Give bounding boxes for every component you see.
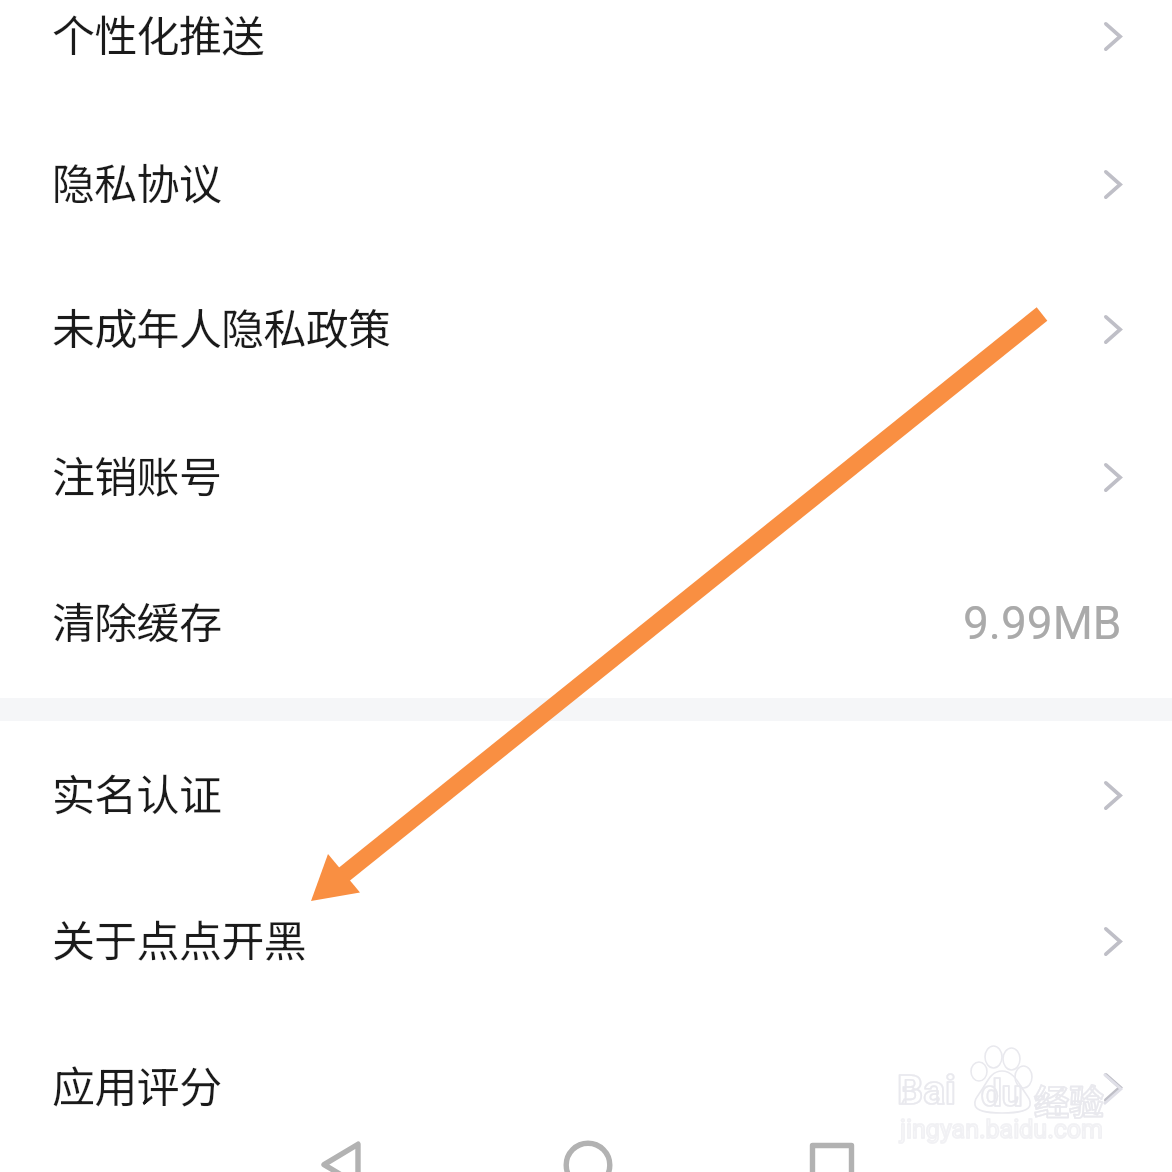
button[interactable]: 关于点点开黑 [0,864,1172,1011]
button[interactable]: Back [274,1096,474,1172]
button[interactable]: Recent apps [712,1096,912,1172]
button[interactable]: 隐私协议 [0,107,1172,254]
other: Open 应用评分 [1104,1073,1122,1102]
button[interactable]: 个性化推送 [0,0,1172,106]
button[interactable]: 应用评分 [0,1010,1172,1157]
other: Open 个性化推送 [1104,22,1122,51]
staticText: 个性化推送 [52,2,264,64]
button[interactable]: Home [488,1096,688,1172]
staticText: Bai [897,1066,956,1114]
staticText: du [981,1072,1023,1115]
button[interactable]: 未成年人隐私政策 [0,252,1172,399]
staticText: 应用评分 [52,1053,222,1115]
staticText: 经验 [1034,1074,1105,1125]
staticText: 隐私协议 [52,150,222,212]
staticText: 关于点点开黑 [52,907,306,969]
staticText: 实名认证 [52,761,222,823]
other: Open 关于点点开黑 [1104,927,1122,956]
button[interactable]: 清除缓存 [0,546,1172,693]
button[interactable]: 实名认证 [0,718,1172,865]
staticText: 注销账号 [52,443,222,505]
button[interactable]: 注销账号 [0,400,1172,547]
other: Open 未成年人隐私政策 [1104,315,1122,344]
staticText: 9.99MB [963,596,1122,650]
staticText: 清除缓存 [52,589,222,651]
staticText: 未成年人隐私政策 [52,295,391,357]
other: Open 实名认证 [1104,781,1122,810]
other: Open 注销账号 [1104,463,1122,492]
staticText: jingyan.baidu.com [900,1115,1104,1144]
other: Open 隐私协议 [1104,170,1122,199]
